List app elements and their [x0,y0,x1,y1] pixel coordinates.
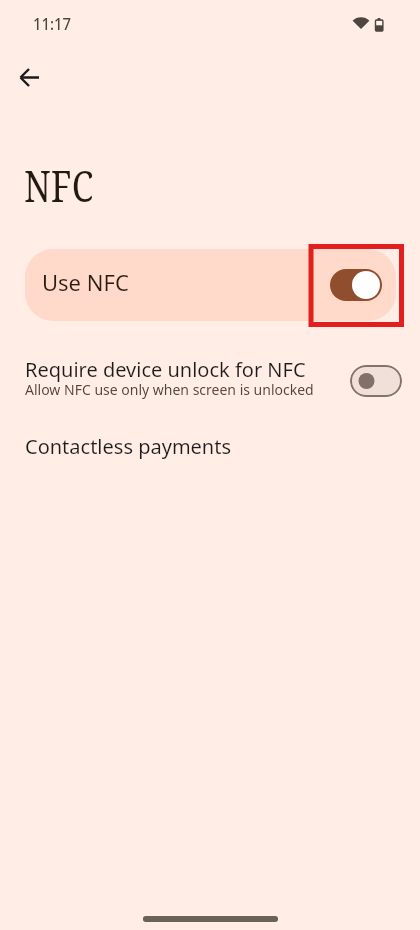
staticText: NFC [24,155,94,215]
button[interactable] [9,57,49,97]
staticText: Use NFC [42,267,129,297]
staticText: 11:17 [33,12,71,35]
staticText: Require device unlock for NFC [25,356,306,383]
button[interactable]: Use NFC [25,249,396,321]
button[interactable]: Contactless payments [0,425,420,473]
button[interactable]: Require device unlock for NFC [0,348,420,412]
staticText: Contactless payments [25,433,232,460]
button[interactable] [330,269,382,301]
staticText: Allow NFC use only when screen is unlock… [25,380,314,399]
